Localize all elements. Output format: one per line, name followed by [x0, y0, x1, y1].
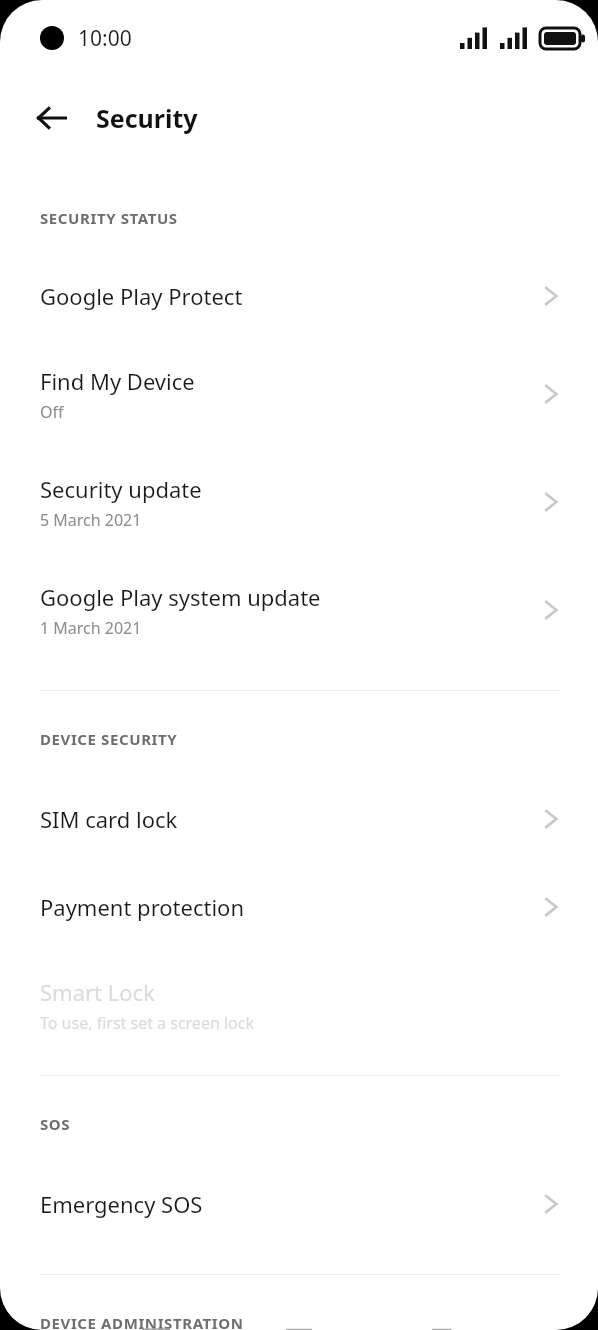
staticText: Find My Device: [40, 366, 195, 396]
staticText: DEVICE ADMINISTRATION: [40, 1313, 244, 1330]
staticText: SIM card lock: [40, 804, 178, 834]
staticText: SOS: [40, 1114, 71, 1134]
staticText: SECURITY STATUS: [40, 208, 178, 228]
staticText: Smart Lock: [40, 977, 155, 1007]
staticText: 5 March 2021: [40, 509, 142, 531]
staticText: Emergency SOS: [40, 1189, 203, 1219]
staticText: 1 March 2021: [40, 617, 142, 639]
button[interactable]: Google Play system update: [0, 556, 598, 664]
button[interactable]: Google Play Protect: [0, 252, 598, 340]
staticText: Security update: [40, 474, 202, 504]
staticText: Google Play Protect: [40, 281, 243, 311]
button[interactable]: Emergency SOS: [0, 1160, 598, 1248]
staticText: Off: [40, 401, 64, 423]
button: Smart Lock: [0, 951, 598, 1059]
button[interactable]: Security update: [0, 448, 598, 556]
staticText: To use, first set a screen lock: [40, 1012, 255, 1034]
staticText: Payment protection: [40, 892, 245, 922]
staticText: DEVICE SECURITY: [40, 729, 178, 749]
staticText: Security: [96, 101, 198, 135]
staticText: 10:00: [78, 24, 132, 53]
button[interactable]: Find My Device: [0, 340, 598, 448]
button[interactable]: Payment protection: [0, 863, 598, 951]
button[interactable]: SIM card lock: [0, 775, 598, 863]
staticText: Google Play system update: [40, 582, 321, 612]
button[interactable]: Back: [22, 88, 82, 148]
